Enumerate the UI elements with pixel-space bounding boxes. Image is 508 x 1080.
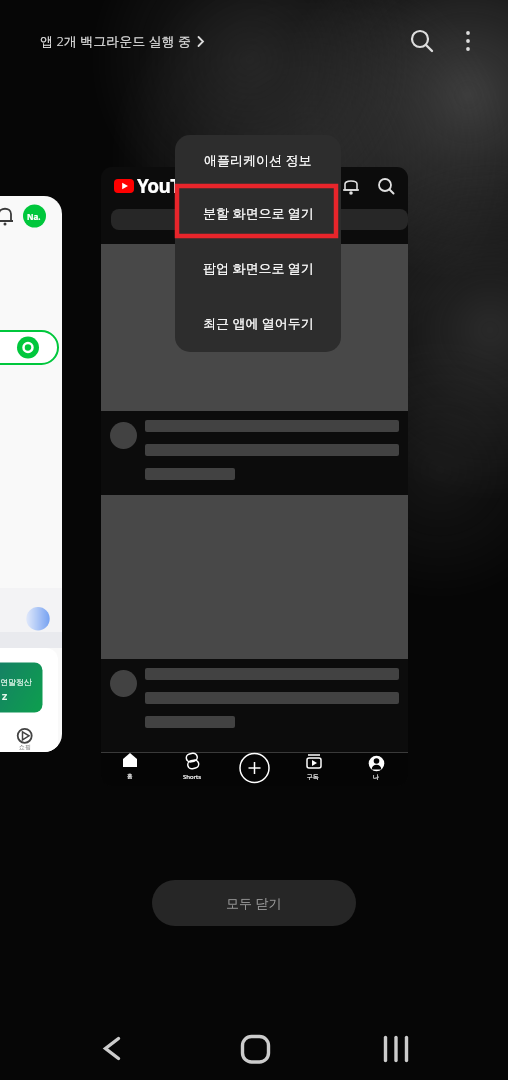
button[interactable]: 연말정산	[0, 196, 62, 752]
button[interactable]: 팝업 화면으로 열기	[175, 240, 341, 295]
staticText: 나	[373, 773, 379, 781]
staticText: 분할 화면으로 열기	[203, 204, 314, 222]
staticText: 쇼핑	[19, 743, 31, 751]
staticText: 홈	[127, 773, 133, 780]
button[interactable]	[454, 26, 482, 54]
button[interactable]	[377, 1028, 417, 1068]
button[interactable]: 앱 2개 백그라운드 실행 중	[40, 28, 204, 54]
button[interactable]	[406, 26, 438, 58]
staticText: 연말정산	[0, 677, 32, 687]
staticText: 팝업 화면으로 열기	[203, 259, 314, 277]
staticText: 구독	[307, 773, 319, 781]
staticText: Z	[2, 690, 8, 702]
button[interactable]: 분할 화면으로 열기	[175, 185, 341, 240]
button[interactable]	[95, 1028, 135, 1068]
staticText: Na.	[27, 211, 41, 222]
button[interactable]: 모두 닫기	[152, 880, 356, 926]
staticText: 애플리케이션 정보	[204, 151, 312, 169]
staticText: 최근 앱에 열어두기	[203, 314, 314, 332]
button[interactable]: 애플리케이션 정보	[175, 135, 341, 185]
staticText: 앱 2개 백그라운드 실행 중	[40, 32, 191, 50]
button[interactable]: YouTube	[101, 167, 408, 786]
button[interactable]: 최근 앱에 열어두기	[175, 295, 341, 350]
staticText: YouTube	[137, 173, 214, 199]
staticText: 모두 닫기	[226, 894, 282, 912]
staticText: Shorts	[183, 773, 202, 781]
button[interactable]	[234, 1028, 274, 1068]
